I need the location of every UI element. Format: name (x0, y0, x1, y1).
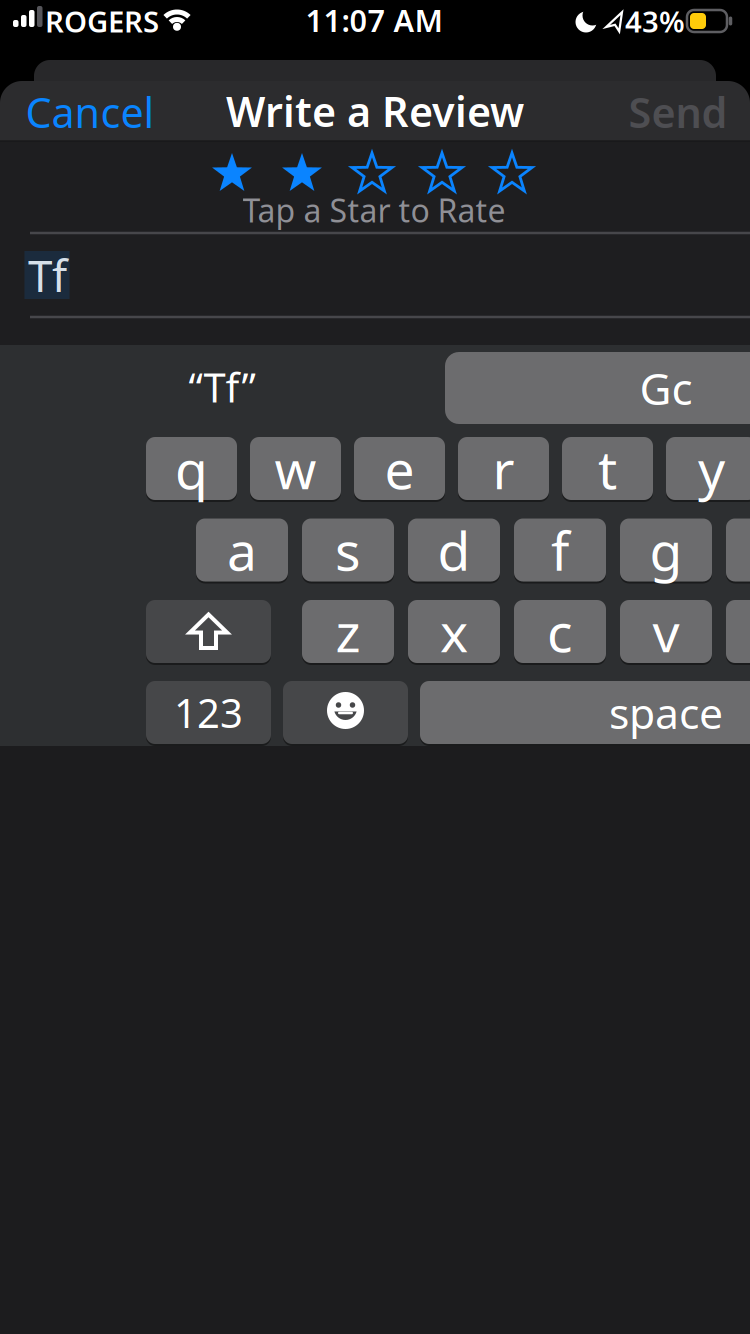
button[interactable]: Rate 3 stars (348, 151, 396, 197)
staticText: ROGERS (45, 1, 159, 40)
staticText: v (652, 596, 679, 667)
button[interactable]: d (408, 518, 500, 581)
button[interactable]: Emoji (283, 681, 408, 744)
staticText: c (547, 596, 573, 667)
button[interactable]: w (250, 437, 341, 500)
staticText: Send (628, 85, 727, 139)
button[interactable]: space (420, 681, 750, 744)
button[interactable]: Rate 1 star (208, 151, 256, 197)
staticText: Tap a Star to Rate (242, 189, 505, 231)
staticText: s (335, 515, 361, 585)
button[interactable]: v (620, 600, 712, 663)
staticText: g (649, 515, 682, 585)
button[interactable]: b (726, 600, 750, 663)
button[interactable]: c (514, 600, 606, 663)
button[interactable]: r (458, 437, 549, 500)
staticText: f (551, 515, 569, 585)
button[interactable]: x (408, 600, 500, 663)
staticText: z (335, 596, 360, 667)
button[interactable]: Cancel (25, 85, 154, 139)
button[interactable]: q (146, 437, 237, 500)
staticText: y (698, 433, 725, 504)
button[interactable]: y (666, 437, 750, 500)
button[interactable]: a (196, 518, 288, 581)
staticText: 123 (174, 686, 243, 739)
staticText: q (175, 433, 208, 504)
staticText: w (274, 433, 316, 504)
staticText: e (384, 433, 414, 504)
button[interactable]: z (302, 600, 394, 663)
button[interactable]: g (620, 518, 712, 581)
staticText: 11:07 AM (305, 0, 442, 40)
button[interactable]: Numbers (146, 681, 271, 744)
button[interactable]: Shift (146, 600, 271, 663)
button[interactable]: Send (628, 85, 727, 139)
button[interactable]: s (302, 518, 394, 581)
staticText: Write a Review (226, 84, 524, 138)
staticText: space (609, 684, 723, 741)
button[interactable]: Rate 4 stars (418, 151, 466, 197)
staticText: t (598, 433, 617, 504)
button[interactable]: h (726, 518, 750, 581)
staticText: Cancel (25, 85, 154, 139)
button[interactable]: f (514, 518, 606, 581)
staticText: a (227, 515, 257, 585)
staticText: x (440, 596, 468, 667)
button[interactable]: Rate 2 stars (278, 151, 326, 197)
staticText: Gc (639, 359, 692, 417)
button[interactable]: e (354, 437, 445, 500)
staticText: Tf (28, 246, 67, 304)
button[interactable]: t (562, 437, 653, 500)
staticText: 43% (625, 1, 685, 40)
staticText: r (492, 433, 514, 504)
staticText: “Tf” (188, 360, 255, 413)
button[interactable]: Rate 5 stars (488, 151, 536, 197)
button[interactable]: Gc suggestion (445, 352, 750, 424)
staticText: d (437, 515, 470, 585)
